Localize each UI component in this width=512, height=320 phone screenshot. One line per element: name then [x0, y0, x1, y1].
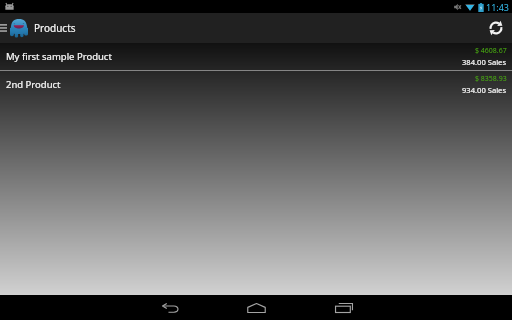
staticText: $ 8358.93	[475, 74, 507, 84]
button[interactable]: Home	[226, 295, 287, 320]
staticText: My first sample Product	[6, 50, 112, 63]
button[interactable]: Recent apps	[313, 295, 374, 320]
staticText: $ 4608.67	[475, 46, 507, 56]
button[interactable]: Refresh	[483, 13, 512, 43]
staticText: 11:43	[486, 1, 510, 13]
button[interactable]: 2nd Product	[0, 71, 512, 98]
staticText: 2nd Product	[6, 78, 61, 91]
button[interactable]: Open navigation drawer	[0, 13, 8, 43]
staticText: 934.00 Sales	[462, 85, 507, 95]
button[interactable]: Back	[140, 295, 201, 320]
staticText: Products	[34, 21, 76, 35]
button[interactable]: My first sample Product	[0, 43, 512, 70]
staticText: 384.00 Sales	[462, 57, 507, 67]
